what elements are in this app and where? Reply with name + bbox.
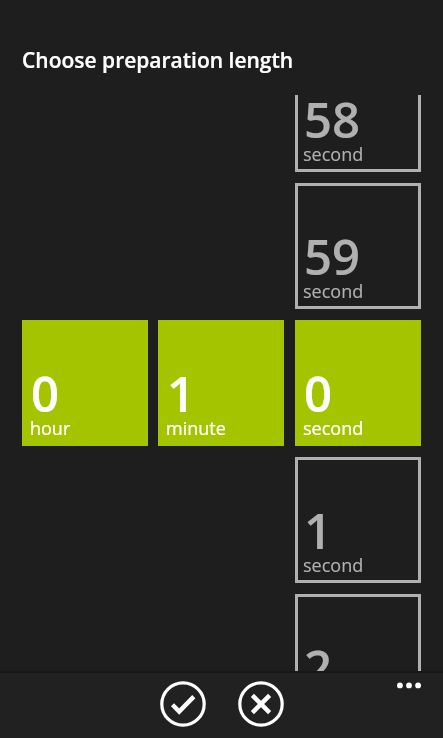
- button[interactable]: More options: [386, 672, 436, 699]
- staticText: 58: [304, 95, 361, 153]
- staticText: Choose preparation length: [22, 46, 294, 75]
- staticText: second: [303, 553, 364, 578]
- button[interactable]: 59: [295, 183, 421, 309]
- staticText: 1: [304, 497, 333, 564]
- staticText: second: [303, 142, 364, 167]
- button[interactable]: 1: [158, 320, 284, 446]
- button[interactable]: 0: [22, 320, 148, 446]
- staticText: 59: [304, 223, 361, 290]
- button[interactable]: 58: [295, 95, 421, 172]
- button[interactable]: 2: [295, 594, 421, 672]
- staticText: 0: [304, 360, 333, 427]
- staticText: hour: [30, 416, 71, 441]
- staticText: 2: [304, 634, 333, 672]
- staticText: 1: [167, 360, 196, 427]
- button[interactable]: Cancel: [237, 680, 285, 728]
- button[interactable]: 1: [295, 457, 421, 583]
- staticText: second: [303, 416, 364, 441]
- button[interactable]: 0: [295, 320, 421, 446]
- button[interactable]: Accept: [159, 680, 207, 728]
- staticText: minute: [166, 416, 226, 441]
- staticText: second: [303, 279, 364, 304]
- staticText: 0: [31, 360, 60, 427]
